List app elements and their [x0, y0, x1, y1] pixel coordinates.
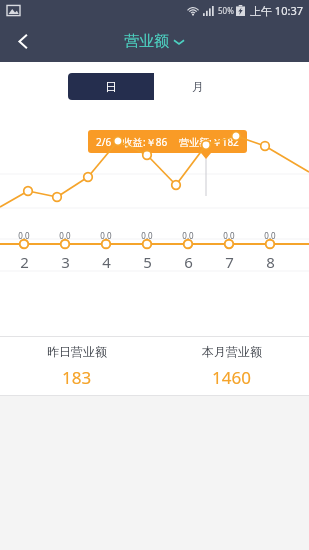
staticText: 日 [105, 79, 117, 94]
staticText: 1460 [212, 366, 251, 389]
button[interactable]: 月 [154, 73, 241, 100]
staticText: 营业额:￥182 [179, 135, 239, 149]
staticText: 0.0 [264, 230, 276, 241]
staticText: 昨日营业额 [47, 344, 107, 359]
button[interactable]: 营业额 [124, 32, 185, 51]
staticText: 0.0 [18, 230, 30, 241]
button[interactable]: 本月营业额 [154, 337, 309, 395]
staticText: 0.0 [182, 230, 194, 241]
button[interactable]: Back [0, 20, 46, 62]
staticText: 50% [218, 5, 234, 16]
staticText: 2/6 [96, 135, 112, 149]
staticText: 2 [20, 252, 29, 272]
button[interactable]: 2/6 [88, 130, 247, 153]
staticText: 0.0 [141, 230, 153, 241]
staticText: 183 [62, 366, 92, 389]
staticText: 营业额 [124, 32, 169, 51]
staticText: 月 [192, 79, 204, 94]
staticText: 0.0 [223, 230, 235, 241]
staticText: 3 [61, 252, 70, 272]
staticText: 上午 10:37 [250, 3, 303, 18]
staticText: 0.0 [59, 230, 71, 241]
staticText: 收益:￥86 [123, 135, 168, 149]
staticText: 0.0 [100, 230, 112, 241]
button[interactable]: 昨日营业额 [0, 337, 154, 395]
staticText: 本月营业额 [202, 344, 262, 359]
staticText: 7 [225, 252, 234, 272]
staticText: 6 [184, 252, 193, 272]
staticText: 4 [102, 252, 111, 272]
staticText: 5 [143, 252, 152, 272]
staticText: 8 [266, 252, 275, 272]
button[interactable]: 日 [68, 73, 154, 100]
